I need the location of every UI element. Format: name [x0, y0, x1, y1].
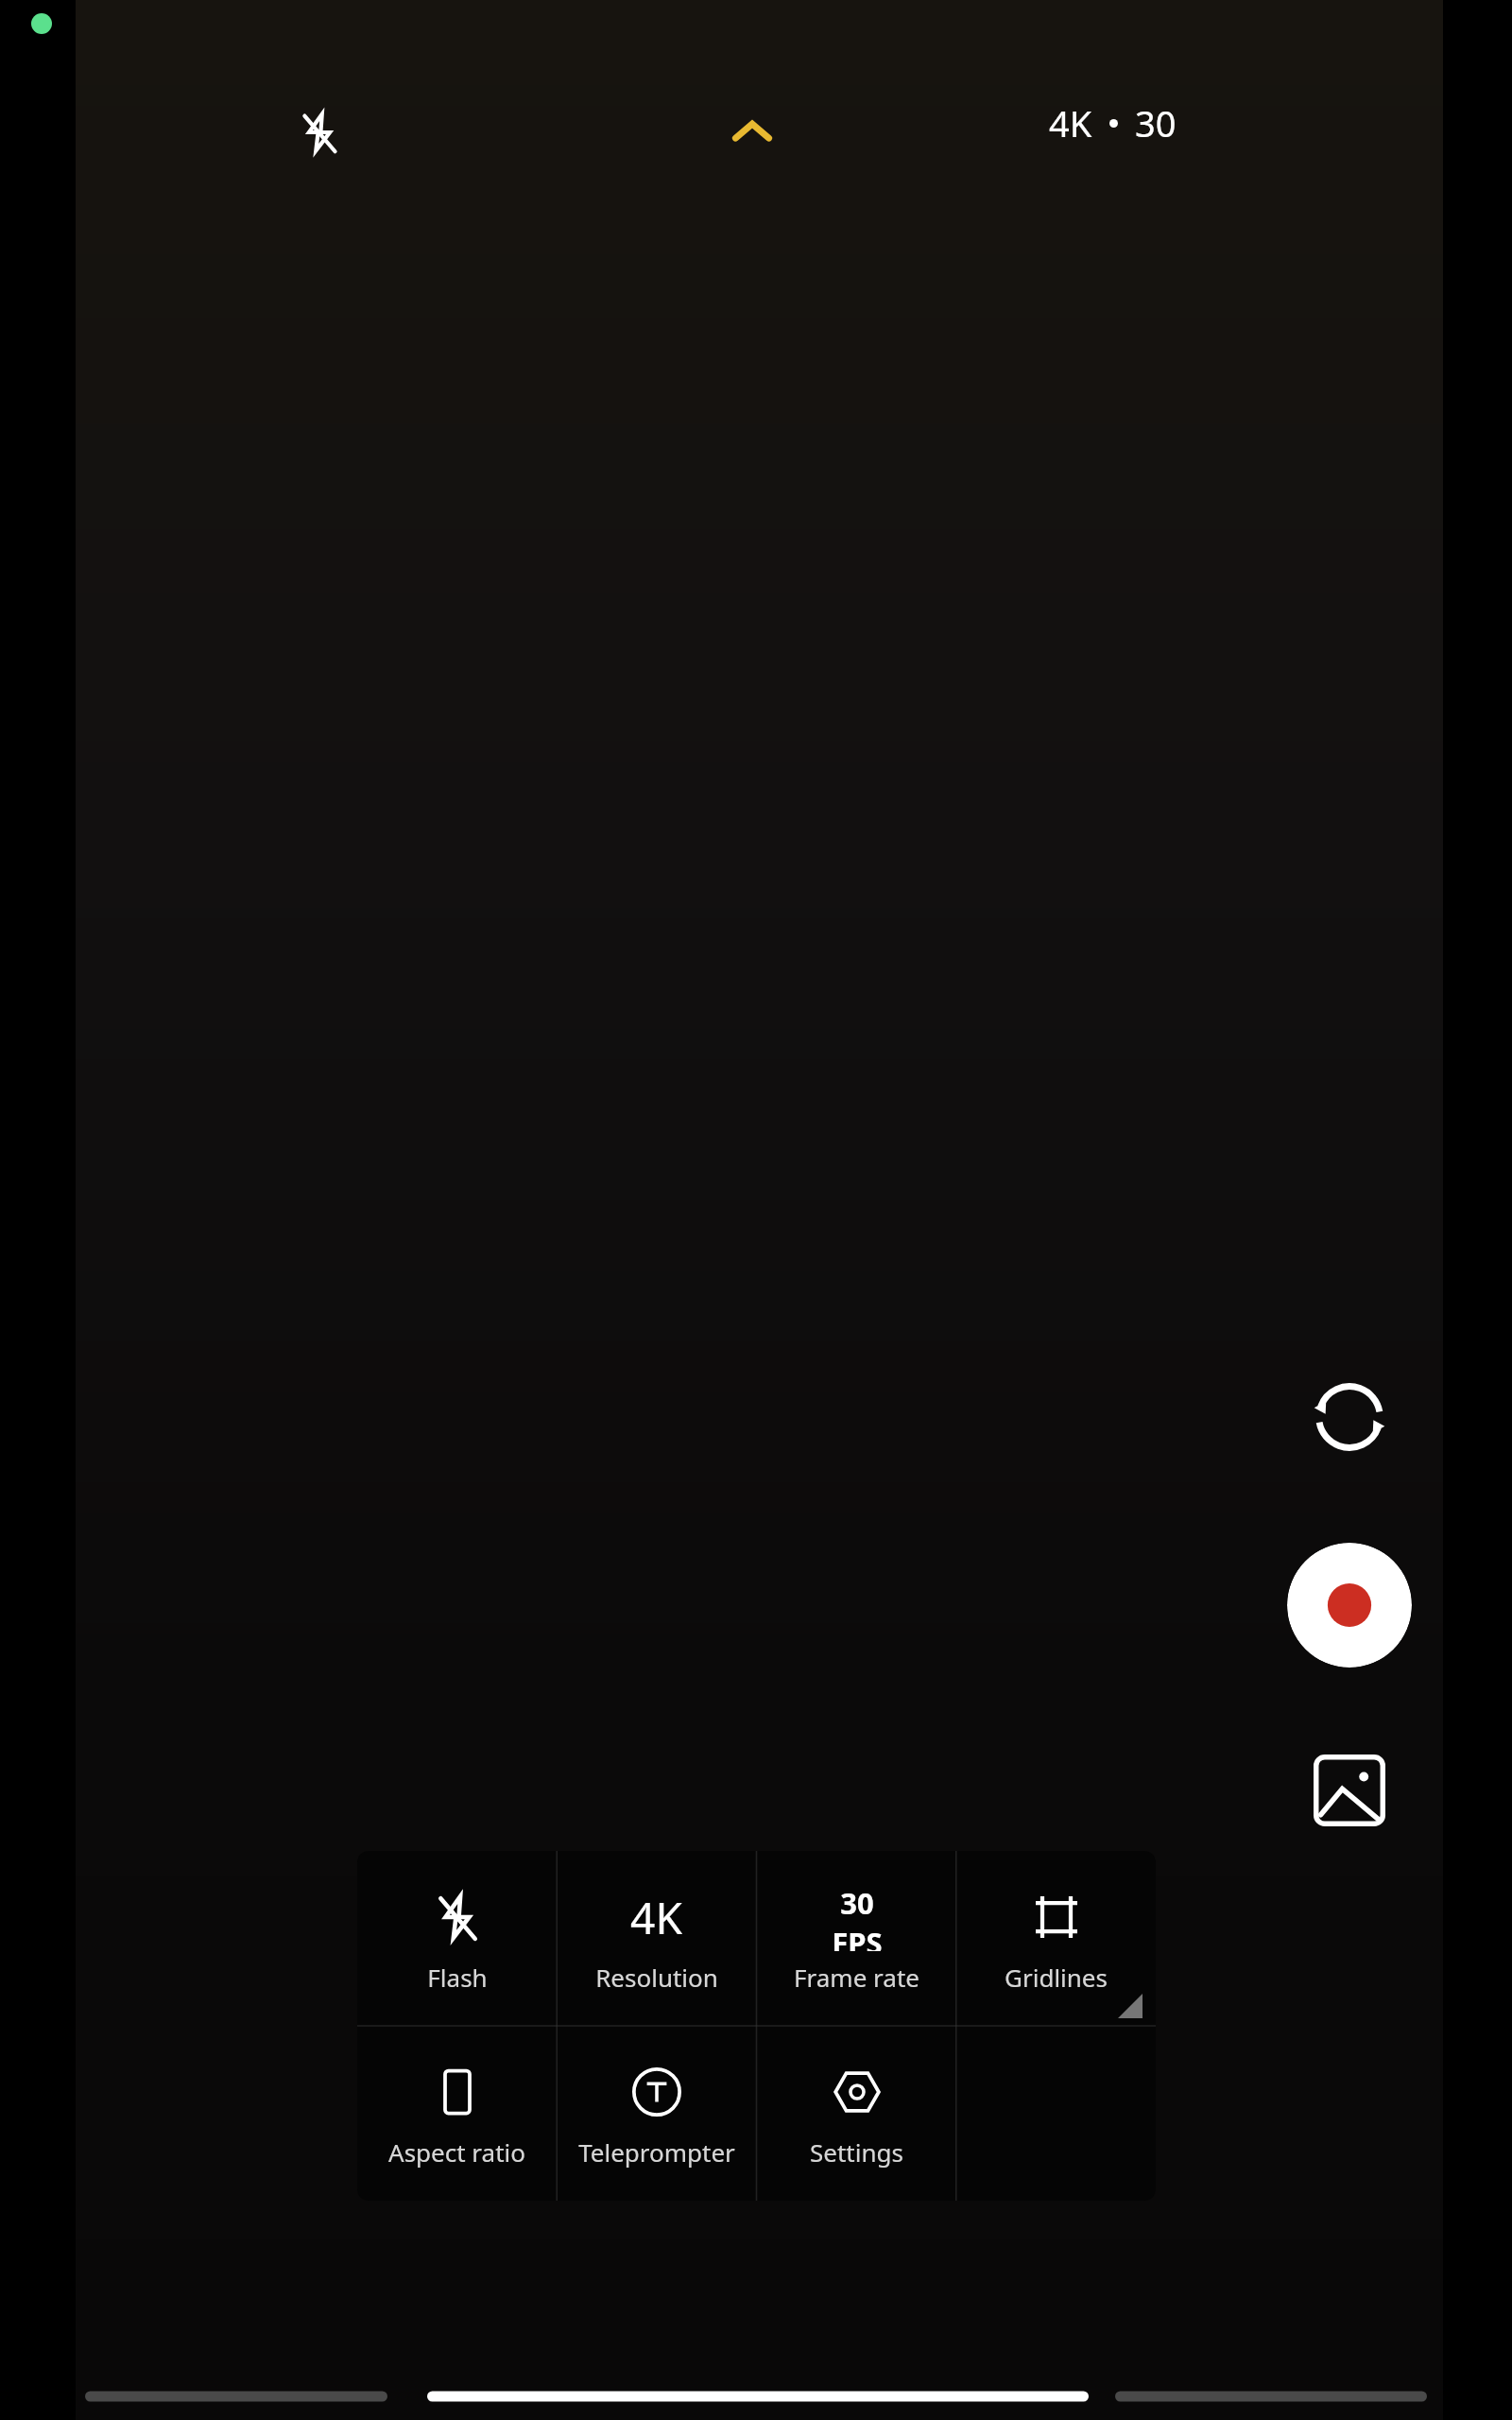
staticText: 4K — [1049, 98, 1092, 147]
staticText: FPS — [832, 1923, 883, 1951]
staticText: Gridlines — [1005, 1961, 1108, 1994]
staticText: Aspect ratio — [388, 2135, 525, 2169]
button[interactable]: Record — [1287, 1543, 1412, 1668]
staticText: Settings — [810, 2135, 903, 2169]
button[interactable]: Expand controls — [714, 95, 790, 170]
button[interactable]: Frame rate — [757, 1851, 956, 2026]
button[interactable]: Gridlines — [956, 1851, 1156, 2026]
button[interactable]: Teleprompter — [557, 2026, 756, 2201]
button[interactable]: Settings — [757, 2026, 956, 2201]
button[interactable]: Flash — [357, 1851, 557, 2026]
staticText: Flash — [427, 1961, 488, 1994]
button[interactable]: Aspect ratio — [357, 2026, 557, 2201]
staticText: 30 — [1135, 98, 1177, 147]
staticText: 30 — [840, 1883, 874, 1923]
button[interactable]: Resolution — [557, 1851, 756, 2026]
staticText: 4K — [630, 1888, 682, 1947]
staticText: Frame rate — [794, 1961, 919, 1994]
button[interactable]: Gallery — [1287, 1728, 1412, 1853]
button[interactable]: Flash off — [280, 93, 359, 172]
button[interactable]: Switch camera — [1287, 1355, 1412, 1479]
button[interactable]: 4K — [1049, 98, 1177, 147]
staticText: Resolution — [595, 1961, 718, 1994]
staticText: Teleprompter — [578, 2135, 735, 2169]
